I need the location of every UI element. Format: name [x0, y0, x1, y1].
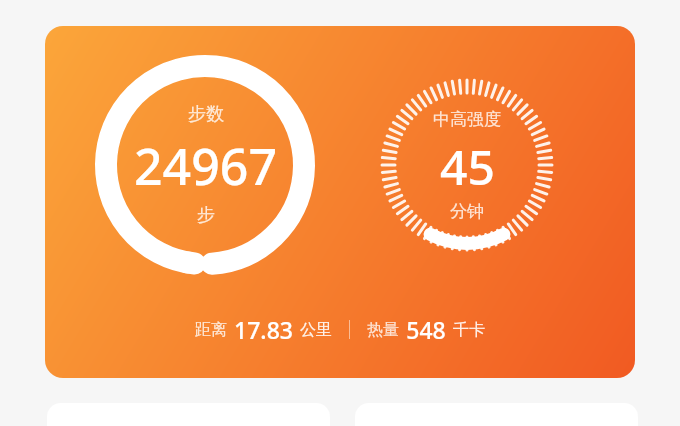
- staticText: 热量: [367, 320, 399, 340]
- staticText: 24967: [134, 132, 277, 200]
- staticText: 步数: [188, 103, 224, 126]
- staticText: 公里: [300, 320, 332, 340]
- other: 步数 24967 步: [95, 55, 315, 275]
- staticText: 千卡: [453, 320, 485, 340]
- button[interactable]: 步数 24967 步: [45, 26, 635, 378]
- staticText: 距离: [195, 320, 227, 340]
- staticText: 548: [406, 314, 446, 345]
- staticText: 中高强度: [433, 109, 501, 130]
- staticText: 分钟: [450, 201, 484, 222]
- staticText: 45: [440, 134, 495, 199]
- staticText: 步: [197, 204, 215, 227]
- other: 中高强度 45 分钟: [381, 79, 553, 251]
- staticText: 17.83: [234, 314, 293, 345]
